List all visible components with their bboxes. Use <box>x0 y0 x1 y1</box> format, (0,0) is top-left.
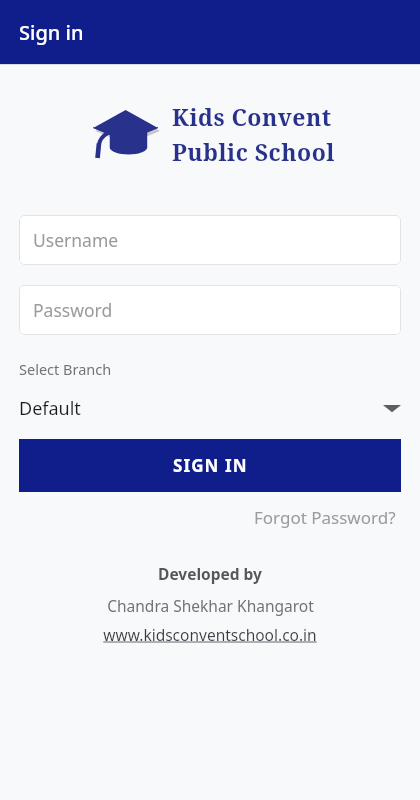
button[interactable]: Password <box>19 285 401 335</box>
staticText: Public School <box>172 136 335 167</box>
button[interactable]: Default <box>19 391 401 425</box>
staticText: SIGN IN <box>173 454 248 477</box>
button[interactable]: Username <box>19 215 401 265</box>
staticText: www.kidsconventschool.co.in <box>103 624 317 645</box>
button[interactable]: www.kidsconventschool.co.in <box>103 624 317 645</box>
staticText: Default <box>19 396 81 421</box>
button[interactable]: Forgot Password? <box>230 500 420 535</box>
staticText: Developed by <box>158 563 262 584</box>
button[interactable]: SIGN IN <box>19 439 401 492</box>
staticText: Chandra Shekhar Khangarot <box>107 595 314 616</box>
staticText: Select Branch <box>19 359 112 379</box>
staticText: Forgot Password? <box>254 506 396 529</box>
staticText: Sign in <box>19 19 84 46</box>
staticText: Password <box>33 298 113 322</box>
staticText: Kids Convent <box>172 101 332 132</box>
staticText: Username <box>33 228 119 252</box>
other: School logo <box>86 104 158 164</box>
